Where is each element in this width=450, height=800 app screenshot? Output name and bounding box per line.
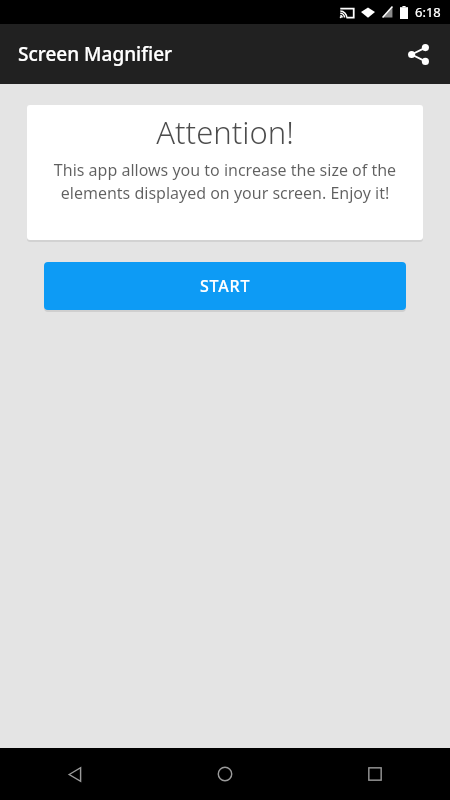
staticText: This app allows you to increase the size… (35, 159, 415, 204)
staticText: START (200, 275, 251, 297)
button[interactable]: Share (394, 30, 442, 78)
button[interactable]: Back (0, 748, 150, 800)
button[interactable]: Home (150, 748, 300, 800)
staticText: Attention! (156, 111, 294, 153)
button[interactable]: Recent apps (300, 748, 450, 800)
staticText: Screen Magnifier (18, 41, 173, 67)
button[interactable]: START (44, 262, 406, 310)
staticText: 6:18 (415, 3, 441, 21)
